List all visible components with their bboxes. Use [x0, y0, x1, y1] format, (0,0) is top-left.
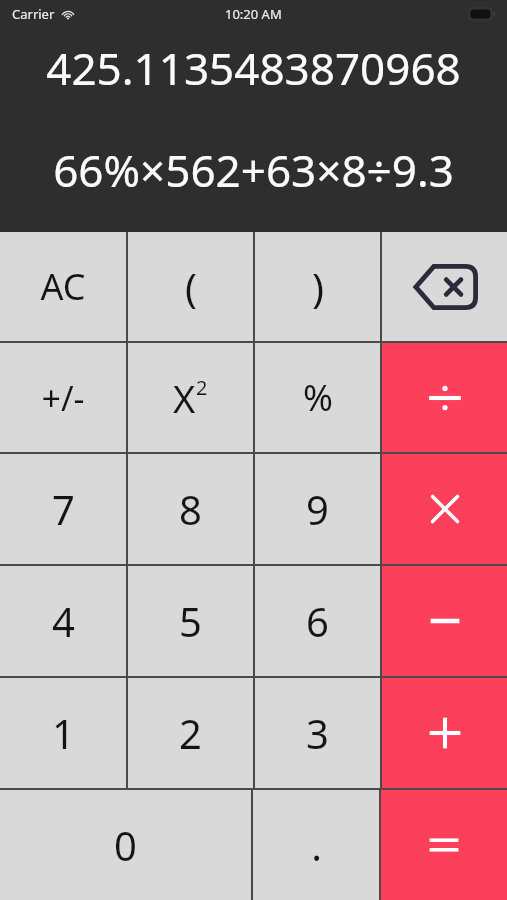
staticText: Carrier — [12, 5, 55, 23]
staticText: 9 — [306, 482, 329, 536]
button[interactable]: Add — [382, 678, 507, 788]
staticText: 1 — [52, 706, 75, 760]
button[interactable]: Subtract — [382, 566, 507, 676]
staticText: 7 — [52, 482, 75, 536]
button[interactable]: ( — [128, 232, 253, 341]
staticText: AC — [40, 262, 86, 311]
button[interactable]: % — [255, 343, 380, 452]
staticText: 2 — [179, 706, 202, 760]
button[interactable]: 4 — [0, 566, 126, 676]
staticText: X — [173, 372, 196, 424]
button[interactable]: 5 — [128, 566, 253, 676]
button[interactable]: X — [128, 343, 253, 452]
button[interactable]: 0 — [0, 790, 251, 900]
staticText: 66%×562+63×8÷9.3 — [10, 140, 497, 200]
staticText: +/- — [41, 375, 85, 421]
button[interactable]: Backspace — [382, 232, 507, 341]
staticText: 5 — [179, 594, 202, 648]
button[interactable]: 7 — [0, 454, 126, 564]
staticText: 0 — [114, 818, 137, 872]
staticText: 6 — [306, 594, 329, 648]
button[interactable]: 8 — [128, 454, 253, 564]
staticText: 4 — [52, 594, 75, 648]
staticText: ) — [312, 260, 324, 314]
button[interactable]: 2 — [128, 678, 253, 788]
button[interactable]: AC — [0, 232, 126, 341]
button[interactable]: +/- — [0, 343, 126, 452]
staticText: 8 — [179, 482, 202, 536]
button[interactable]: 3 — [255, 678, 380, 788]
button[interactable]: Equals — [381, 790, 507, 900]
button[interactable]: Divide — [382, 343, 507, 452]
staticText: . — [311, 818, 322, 872]
button[interactable]: . — [253, 790, 379, 900]
button[interactable]: Multiply — [382, 454, 507, 564]
staticText: ( — [185, 260, 197, 314]
button[interactable]: 6 — [255, 566, 380, 676]
staticText: 10:20 AM — [225, 5, 282, 23]
button[interactable]: ) — [255, 232, 380, 341]
staticText: 3 — [306, 706, 329, 760]
button[interactable]: 9 — [255, 454, 380, 564]
button[interactable]: 1 — [0, 678, 126, 788]
staticText: 425.1135483870968 — [10, 38, 497, 98]
staticText: % — [303, 373, 333, 422]
staticText: 2 — [196, 374, 208, 401]
